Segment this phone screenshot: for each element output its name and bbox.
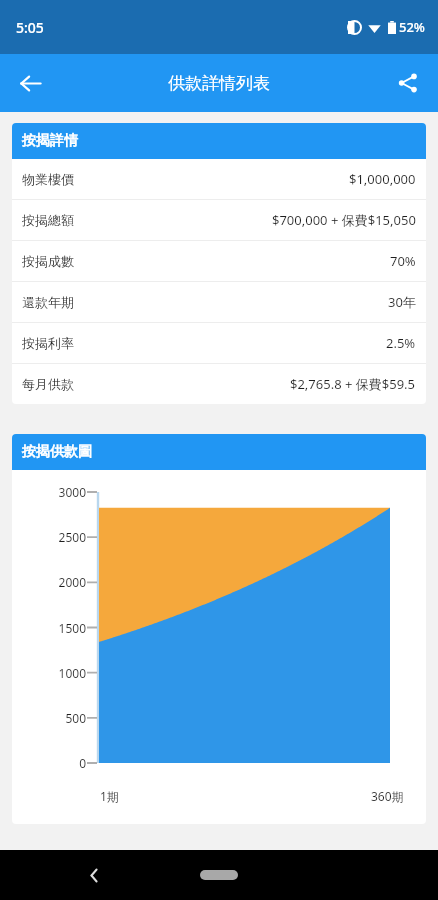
- staticText: 500: [16, 710, 86, 726]
- staticText: 30年: [388, 293, 416, 311]
- staticText: $700,000 + 保費$15,050: [272, 211, 416, 229]
- staticText: 1500: [16, 620, 86, 636]
- staticText: 按揭利率: [22, 335, 74, 351]
- staticText: 按揭總額: [22, 212, 74, 228]
- button[interactable]: Share: [384, 59, 432, 107]
- staticText: 還款年期: [22, 294, 74, 310]
- staticText: 2.5%: [386, 334, 416, 352]
- staticText: 0: [16, 755, 86, 771]
- button[interactable]: Back: [6, 59, 54, 107]
- button[interactable]: 還款年期: [12, 282, 426, 322]
- staticText: 每月供款: [22, 376, 74, 392]
- staticText: 52%: [399, 18, 425, 36]
- staticText: $2,765.8 + 保費$59.5: [290, 375, 416, 393]
- button[interactable]: 物業樓價: [12, 159, 426, 199]
- staticText: 3000: [16, 484, 86, 500]
- staticText: 1期: [100, 788, 119, 804]
- staticText: 按揭詳情: [22, 132, 78, 150]
- button[interactable]: Home: [189, 862, 249, 888]
- staticText: 按揭成數: [22, 253, 74, 269]
- staticText: 物業樓價: [22, 171, 74, 187]
- staticText: 1000: [16, 665, 86, 681]
- staticText: 5:05: [16, 18, 44, 37]
- button[interactable]: 按揭成數: [12, 241, 426, 281]
- button[interactable]: 按揭總額: [12, 200, 426, 240]
- staticText: 按揭供款圖: [22, 443, 92, 461]
- button[interactable]: Back: [74, 855, 114, 895]
- button[interactable]: 按揭利率: [12, 323, 426, 363]
- staticText: 70%: [390, 252, 416, 270]
- staticText: 2500: [16, 529, 86, 545]
- staticText: 360期: [371, 788, 404, 804]
- staticText: 2000: [16, 574, 86, 590]
- staticText: 供款詳情列表: [168, 73, 270, 94]
- staticText: $1,000,000: [349, 170, 416, 188]
- button[interactable]: 每月供款: [12, 364, 426, 404]
